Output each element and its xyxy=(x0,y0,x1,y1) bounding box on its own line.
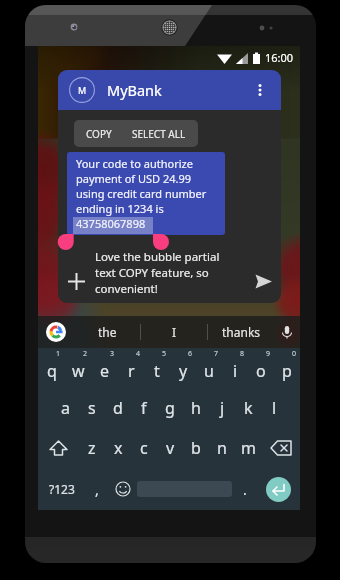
button[interactable]: M xyxy=(58,70,281,110)
button[interactable]: More options xyxy=(249,79,271,101)
staticText: convenient! xyxy=(95,281,158,297)
staticText: using credit card number xyxy=(76,186,207,201)
staticText: h xyxy=(191,397,201,419)
staticText: ending in 1234 is xyxy=(76,201,164,216)
staticText: d xyxy=(113,397,123,419)
button[interactable]: 7 xyxy=(196,348,222,388)
staticText: k xyxy=(244,397,253,419)
staticText: p xyxy=(282,360,292,382)
button[interactable]: f xyxy=(131,388,157,428)
staticText: j xyxy=(220,397,225,419)
button[interactable]: h xyxy=(183,388,209,428)
staticText: a xyxy=(61,397,70,419)
staticText: m xyxy=(241,437,256,459)
button[interactable]: 9 xyxy=(248,348,274,388)
button[interactable]: 3 xyxy=(92,348,118,388)
button[interactable]: z xyxy=(78,428,105,468)
button[interactable]: v xyxy=(157,428,183,468)
button[interactable]: 4 xyxy=(118,348,144,388)
button[interactable]: Your code to authorize xyxy=(67,152,225,235)
button[interactable]: Google xyxy=(38,316,74,348)
staticText: 43758067898 xyxy=(76,216,146,231)
staticText: e xyxy=(100,360,110,382)
button[interactable]: Voice input xyxy=(274,316,300,348)
button[interactable]: , xyxy=(85,468,109,510)
staticText: 16:00 xyxy=(265,50,294,65)
button[interactable]: the xyxy=(74,316,140,348)
staticText: 1 xyxy=(56,349,61,359)
staticText: z xyxy=(88,437,96,459)
button[interactable]: l xyxy=(261,388,287,428)
staticText: 5 xyxy=(162,349,167,359)
staticText: o xyxy=(256,360,266,382)
staticText: c xyxy=(140,437,148,459)
button[interactable]: COPY xyxy=(74,120,122,147)
button[interactable]: 2 xyxy=(65,348,92,388)
button[interactable]: Backspace xyxy=(261,428,300,468)
staticText: MyBank xyxy=(107,80,162,100)
button[interactable]: k xyxy=(235,388,261,428)
button[interactable]: Space xyxy=(136,468,233,510)
staticText: x xyxy=(114,437,123,459)
staticText: COPY xyxy=(86,127,112,141)
staticText: the xyxy=(98,324,117,340)
button[interactable]: 0 xyxy=(274,348,300,388)
staticText: y xyxy=(179,360,188,382)
staticText: Love the bubble partial xyxy=(95,249,220,265)
button[interactable]: thanks xyxy=(208,316,274,348)
button[interactable]: SELECT ALL xyxy=(122,120,198,147)
staticText: 6 xyxy=(188,349,193,359)
button[interactable]: Shift xyxy=(38,428,78,468)
staticText: b xyxy=(191,437,201,459)
staticText: f xyxy=(141,397,147,419)
button[interactable]: c xyxy=(131,428,157,468)
staticText: thanks xyxy=(222,324,261,340)
staticText: v xyxy=(166,437,175,459)
staticText: t xyxy=(154,360,160,382)
staticText: 9 xyxy=(266,349,271,359)
staticText: 8 xyxy=(240,349,245,359)
button[interactable]: a xyxy=(52,388,79,428)
staticText: Your code to authorize xyxy=(76,156,193,171)
staticText: text COPY feature, so xyxy=(95,265,209,281)
button[interactable]: Emoji xyxy=(109,468,136,510)
staticText: 4 xyxy=(136,349,141,359)
staticText: 0 xyxy=(292,349,297,359)
staticText: . xyxy=(243,480,247,499)
staticText: n xyxy=(217,437,227,459)
button[interactable]: I xyxy=(141,316,207,348)
button[interactable]: 1 xyxy=(38,348,65,388)
staticText: r xyxy=(128,360,135,382)
button[interactable]: Enter xyxy=(257,468,300,510)
button[interactable]: b xyxy=(183,428,209,468)
button[interactable]: Send xyxy=(245,259,281,303)
staticText: q xyxy=(47,360,57,382)
staticText: 3 xyxy=(110,349,115,359)
button[interactable]: 8 xyxy=(222,348,248,388)
staticText: 7 xyxy=(214,349,219,359)
staticText: SELECT ALL xyxy=(132,127,186,141)
staticText: I xyxy=(172,324,177,340)
button[interactable]: j xyxy=(209,388,235,428)
staticText: u xyxy=(204,360,214,382)
staticText: w xyxy=(72,360,85,382)
staticText: payment of USD 24.99 xyxy=(76,171,192,186)
button[interactable]: ?123 xyxy=(38,468,85,510)
button[interactable]: m xyxy=(235,428,261,468)
staticText: , xyxy=(95,480,99,499)
button[interactable]: n xyxy=(209,428,235,468)
staticText: 2 xyxy=(83,349,88,359)
button[interactable]: d xyxy=(105,388,131,428)
staticText: M xyxy=(78,84,87,96)
button[interactable]: 5 xyxy=(144,348,170,388)
staticText: i xyxy=(233,360,238,382)
button[interactable]: . xyxy=(233,468,257,510)
button[interactable]: g xyxy=(157,388,183,428)
button[interactable]: 6 xyxy=(170,348,196,388)
button[interactable]: Add attachment xyxy=(58,259,95,303)
staticText: s xyxy=(88,397,96,419)
staticText: g xyxy=(165,397,175,419)
staticText: l xyxy=(272,397,277,419)
button[interactable]: x xyxy=(105,428,131,468)
button[interactable]: s xyxy=(79,388,105,428)
